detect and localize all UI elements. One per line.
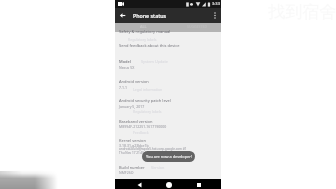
staticText: Android security patch level: [119, 98, 171, 103]
staticText: Regulatory labels: [133, 109, 162, 114]
button[interactable]: Navigate up: [115, 8, 129, 23]
button[interactable]: More options: [209, 8, 221, 23]
staticText: Send feedback about this device: [119, 43, 180, 48]
staticText: 3:33: [212, 1, 220, 6]
staticText: 7.1.1: [119, 85, 127, 90]
staticText: Thu Nov 17 21:45:53 UTC 2016: [119, 151, 164, 155]
staticText: Safety & regulatory manual: [119, 29, 171, 34]
staticText: Phone status: [133, 12, 167, 19]
staticText: M8994F-212251-1617190000: [119, 124, 167, 129]
button[interactable]: Recent apps: [192, 179, 206, 189]
staticText: Legal information: [133, 87, 163, 92]
staticText: ALL: [140, 24, 147, 29]
staticText: Build number: [119, 165, 145, 170]
staticText: System Update: [141, 59, 168, 64]
staticText: Kernel version: [119, 138, 146, 143]
staticText: 3.18.31-g23bbe1b: [119, 143, 149, 148]
staticText: Nexus 5X: [119, 65, 135, 70]
button[interactable]: Home: [162, 179, 176, 189]
staticText: Model: [119, 59, 131, 64]
staticText: Feedback: [133, 130, 149, 135]
button[interactable]: Back: [132, 179, 146, 189]
staticText: January 5, 2017: [119, 104, 145, 109]
staticText: NMF26O: [119, 170, 134, 175]
staticText: Baseband version: [119, 119, 153, 124]
staticText: Version: [151, 165, 165, 170]
staticText: android-build@wpds5.hot.corp.google.com …: [119, 147, 187, 151]
staticText: Android version: [119, 79, 149, 84]
staticText: You are now a developer!: [146, 154, 192, 159]
staticText: Regulatory labels: [128, 37, 157, 42]
